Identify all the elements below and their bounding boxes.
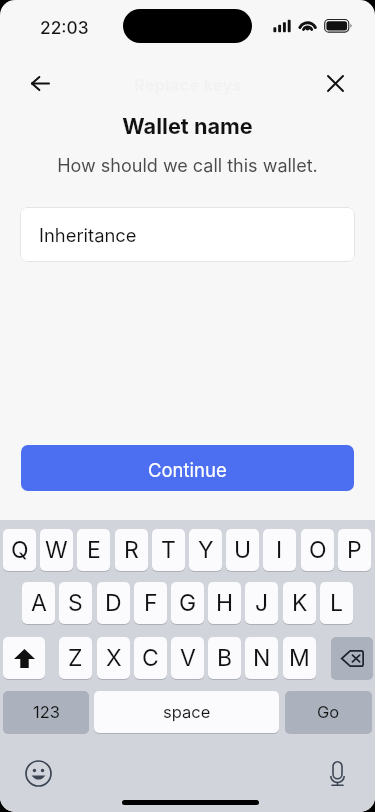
staticText: 22:03 xyxy=(40,17,89,38)
button[interactable]: Inheritance xyxy=(20,207,355,262)
button[interactable]: R xyxy=(115,529,148,571)
staticText: F xyxy=(144,589,158,617)
button[interactable]: Close xyxy=(313,61,357,105)
staticText: I xyxy=(276,536,283,564)
staticText: K xyxy=(292,589,308,617)
button[interactable]: G xyxy=(171,582,204,624)
button[interactable]: U xyxy=(226,529,259,571)
staticText: Z xyxy=(68,644,83,672)
staticText: Go xyxy=(317,702,340,722)
button[interactable]: Y xyxy=(189,529,222,571)
staticText: How should we call this wallet. xyxy=(0,155,375,177)
staticText: V xyxy=(180,644,196,672)
staticText: E xyxy=(87,536,101,564)
staticText: D xyxy=(105,589,122,617)
staticText: N xyxy=(253,644,271,672)
button[interactable]: N xyxy=(245,637,278,679)
button[interactable]: Z xyxy=(59,637,92,679)
button[interactable]: Backspace xyxy=(331,637,373,679)
button[interactable]: M xyxy=(283,637,316,679)
button[interactable]: J xyxy=(245,582,278,624)
button[interactable]: 123 xyxy=(3,691,89,733)
button[interactable]: D xyxy=(97,582,130,624)
button[interactable]: H xyxy=(208,582,241,624)
button[interactable]: A xyxy=(22,582,55,624)
staticText: S xyxy=(68,589,83,617)
button[interactable]: O xyxy=(301,529,334,571)
button[interactable]: Q xyxy=(3,529,36,571)
staticText: H xyxy=(216,589,234,617)
button[interactable]: P xyxy=(338,529,371,571)
button[interactable]: X xyxy=(97,637,130,679)
button[interactable]: E xyxy=(77,529,110,571)
staticText: A xyxy=(31,589,47,617)
staticText: G xyxy=(179,589,197,617)
button[interactable]: Continue xyxy=(21,445,354,491)
button[interactable]: V xyxy=(171,637,204,679)
button[interactable]: K xyxy=(283,582,316,624)
staticText: W xyxy=(45,536,68,564)
button[interactable]: I xyxy=(263,529,296,571)
button[interactable]: Go xyxy=(285,691,372,733)
button[interactable]: space xyxy=(94,691,279,733)
staticText: T xyxy=(161,536,176,564)
staticText: C xyxy=(142,644,159,672)
button[interactable]: T xyxy=(152,529,185,571)
staticText: R xyxy=(124,536,139,564)
staticText: O xyxy=(309,536,327,564)
button[interactable]: Back xyxy=(18,61,62,105)
staticText: Q xyxy=(11,536,29,564)
staticText: X xyxy=(106,644,122,672)
button[interactable]: Emoji keyboard xyxy=(21,756,56,791)
staticText: P xyxy=(347,536,362,564)
staticText: space xyxy=(163,702,211,722)
staticText: M xyxy=(289,644,310,672)
button[interactable]: Dictate xyxy=(320,756,355,791)
button[interactable]: W xyxy=(40,529,73,571)
staticText: Inheritance xyxy=(39,224,137,246)
staticText: B xyxy=(217,644,233,672)
staticText: L xyxy=(330,589,344,617)
button[interactable]: S xyxy=(59,582,92,624)
button[interactable]: L xyxy=(320,582,353,624)
staticText: 123 xyxy=(33,702,60,722)
staticText: U xyxy=(234,536,252,564)
staticText: Wallet name xyxy=(0,113,375,139)
button[interactable]: F xyxy=(134,582,167,624)
button[interactable]: Shift xyxy=(3,637,45,679)
staticText: Y xyxy=(198,536,214,564)
staticText: J xyxy=(255,589,269,617)
button[interactable]: B xyxy=(208,637,241,679)
staticText: Continue xyxy=(148,459,227,481)
button[interactable]: C xyxy=(134,637,167,679)
